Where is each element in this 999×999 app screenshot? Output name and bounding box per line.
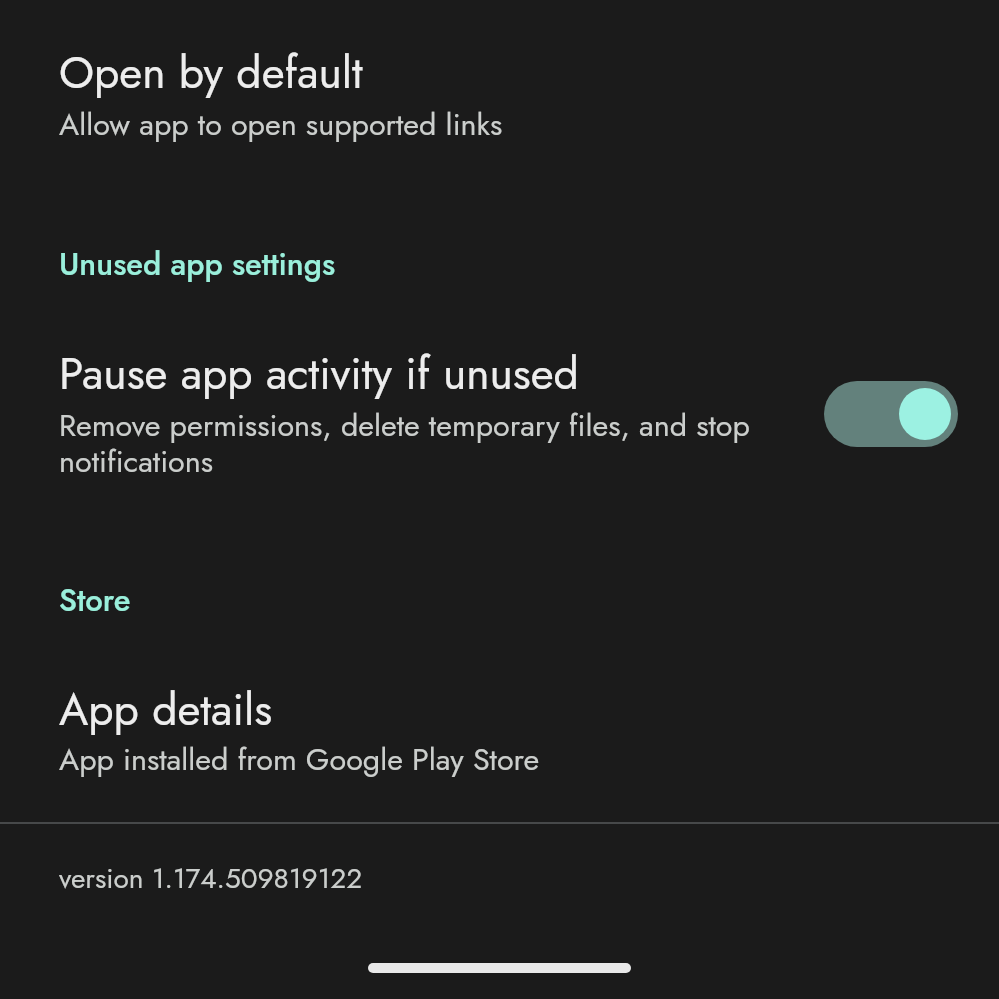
button[interactable]: Open by default [0, 14, 999, 154]
staticText: App installed from Google Play Store [59, 737, 540, 781]
button[interactable]: App details [0, 657, 999, 785]
staticText: App details [59, 677, 273, 741]
button[interactable]: Pause app activity if unused [0, 330, 999, 510]
staticText: Unused app settings [59, 242, 336, 287]
button[interactable]: Pause app activity if unused [824, 381, 958, 447]
staticText: Pause app activity if unused [59, 341, 579, 405]
staticText: Allow app to open supported links [59, 102, 503, 146]
staticText: Remove permissions, delete temporary fil… [59, 403, 819, 483]
staticText: Store [59, 578, 131, 623]
staticText: version 1.174.509819122 [59, 858, 363, 898]
staticText: Open by default [59, 40, 363, 104]
